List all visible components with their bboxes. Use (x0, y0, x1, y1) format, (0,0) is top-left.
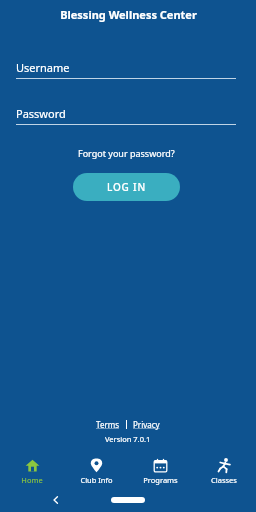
button[interactable]: Classes (192, 454, 256, 488)
staticText: Programs (143, 475, 178, 485)
button[interactable]: Back (46, 490, 66, 510)
button[interactable]: Forgot your password? (74, 145, 179, 161)
staticText: Password (16, 106, 66, 121)
staticText: Username (16, 60, 70, 75)
button[interactable]: Home (111, 497, 145, 503)
staticText: Forgot your password? (78, 147, 175, 159)
staticText: Blessing Wellness Center (60, 7, 197, 22)
staticText: Privacy (133, 419, 160, 430)
staticText: LOG IN (107, 180, 146, 194)
staticText: Classes (211, 475, 237, 485)
button[interactable]: Privacy (130, 418, 163, 431)
staticText: Terms (96, 419, 120, 430)
button[interactable]: Password (16, 106, 236, 125)
staticText: Version 7.0.1 (105, 434, 151, 444)
button[interactable]: LOG IN (73, 173, 180, 201)
button[interactable]: Terms (93, 418, 123, 431)
staticText: Home (21, 475, 43, 485)
button[interactable]: Programs (128, 454, 192, 488)
button[interactable]: Home (0, 454, 64, 488)
button[interactable]: Club Info (64, 454, 128, 488)
button[interactable]: Username (16, 60, 236, 79)
staticText: Club Info (80, 475, 113, 485)
